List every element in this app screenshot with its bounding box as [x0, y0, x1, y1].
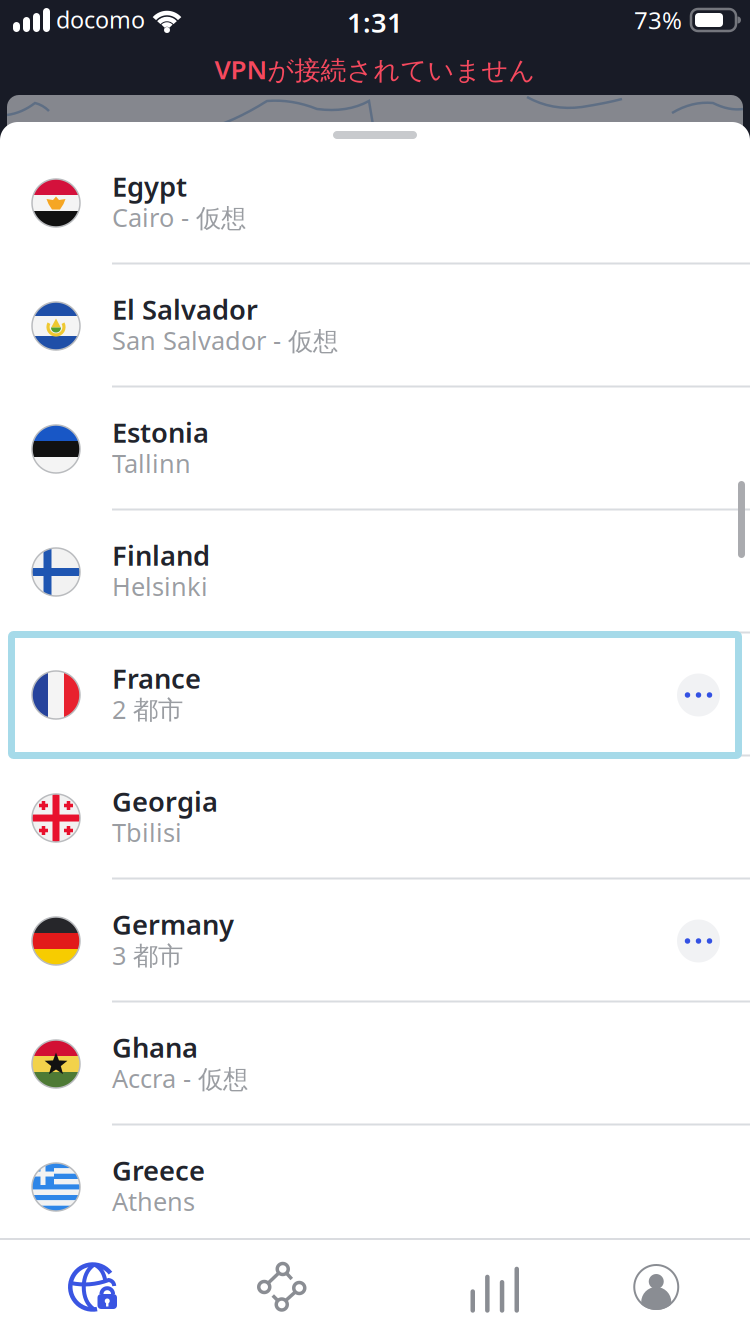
staticText: Egypt	[112, 168, 187, 204]
staticText: 2 都市	[112, 692, 183, 726]
button[interactable]	[677, 919, 720, 962]
staticText: San Salvador - 仮想	[112, 323, 338, 357]
staticText: 3 都市	[112, 938, 183, 972]
button[interactable]: Ghana	[0, 1002, 750, 1125]
staticText: Tbilisi	[112, 815, 182, 849]
staticText: Tallinn	[112, 446, 191, 480]
button[interactable]: Estonia	[0, 387, 750, 510]
button[interactable]	[187, 1261, 375, 1313]
staticText: Finland	[112, 537, 210, 573]
button[interactable]: Germany	[0, 879, 750, 1002]
button[interactable]	[677, 673, 720, 716]
staticText: 1:31	[347, 4, 403, 40]
staticText: Ghana	[112, 1029, 198, 1065]
button[interactable]: Finland	[0, 510, 750, 633]
staticText: France	[112, 660, 201, 696]
staticText: Greece	[112, 1152, 205, 1188]
button[interactable]: Greece	[0, 1125, 750, 1248]
staticText: El Salvador	[112, 291, 258, 327]
staticText: Cairo - 仮想	[112, 200, 246, 234]
button[interactable]	[375, 1261, 562, 1313]
button[interactable]: Georgia	[0, 756, 750, 879]
button[interactable]: France	[0, 633, 750, 756]
staticText: Estonia	[112, 414, 209, 450]
staticText: Germany	[112, 906, 234, 942]
staticText: Georgia	[112, 783, 218, 819]
staticText: Accra - 仮想	[112, 1061, 248, 1095]
button[interactable]: Egypt	[0, 141, 750, 264]
staticText: 73%	[634, 4, 682, 36]
button[interactable]	[0, 1260, 187, 1314]
staticText: docomo	[56, 4, 145, 35]
staticText: Athens	[112, 1184, 195, 1218]
button[interactable]	[562, 1264, 750, 1310]
staticText: Helsinki	[112, 569, 208, 603]
button[interactable]: El Salvador	[0, 264, 750, 387]
staticText: VPNが接続されていません	[214, 52, 535, 87]
